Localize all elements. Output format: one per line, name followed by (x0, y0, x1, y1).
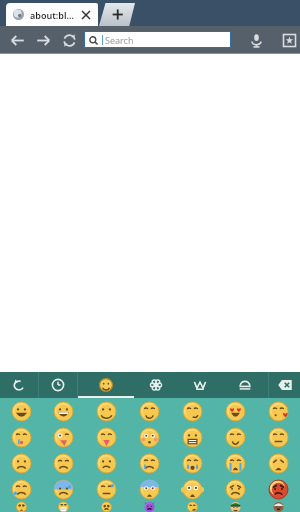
button[interactable]: Emoji TONGUE_WINK (42, 424, 85, 450)
button[interactable]: Emoji GRIMACE (171, 424, 214, 450)
button[interactable]: Emoji TONGUE (85, 424, 128, 450)
button[interactable]: Objects (178, 372, 222, 398)
button[interactable]: Emoji PERSEVERE (0, 502, 42, 512)
button[interactable]: Emoji GRIN (42, 398, 85, 424)
button[interactable]: Voice search (243, 27, 269, 53)
staticText: about:bl… (30, 9, 74, 21)
button[interactable]: Emoji FEARFUL (128, 476, 171, 502)
button[interactable]: Emoji SCREAM (171, 476, 214, 502)
button[interactable]: Emoji CRY_LOUD (171, 450, 214, 476)
button[interactable]: Emoji WORRIED (0, 450, 42, 476)
button[interactable]: Emoji HEART (214, 398, 257, 424)
button[interactable]: Emoji SWEAT (0, 476, 42, 502)
button[interactable]: Emoji SMIRK (171, 398, 214, 424)
button[interactable]: Smileys (78, 372, 134, 398)
button[interactable]: Bookmarks (279, 27, 300, 53)
button[interactable]: Emoji SAVOR (0, 424, 42, 450)
button[interactable]: Recent (39, 372, 77, 398)
button[interactable]: Emoji ELF (214, 502, 257, 512)
button[interactable]: Emoji RELIEF (128, 398, 171, 424)
button[interactable]: Travel (222, 372, 268, 398)
button[interactable]: Emoji SLEEPY (257, 424, 300, 450)
button[interactable]: Emoji DEVIL (128, 502, 171, 512)
button[interactable]: Emoji KISS (257, 398, 300, 424)
button[interactable]: Emoji COLD_SWEAT (42, 476, 85, 502)
button[interactable]: Emoji ANXIOUS (85, 476, 128, 502)
button[interactable]: Emoji SOB (214, 450, 257, 476)
button[interactable]: about:bl… (6, 3, 98, 26)
button[interactable]: Emoji FLUSH (128, 424, 171, 450)
button[interactable]: New tab (99, 3, 135, 26)
button[interactable]: Emoji SMILE (0, 398, 42, 424)
button[interactable]: Nature (134, 372, 178, 398)
button[interactable]: Emoji MASK (42, 502, 85, 512)
button[interactable]: Close tab (79, 8, 92, 21)
button[interactable]: Reload (56, 27, 82, 53)
button[interactable]: Emoji SMUG (171, 502, 214, 512)
button[interactable]: Emoji CONFUSED (85, 450, 128, 476)
button[interactable]: Emoji SLIGHT (85, 398, 128, 424)
button[interactable]: Emoji ANGRY (214, 476, 257, 502)
button[interactable]: Emoji CRY_ONE (128, 450, 171, 476)
button[interactable]: Back (4, 27, 30, 53)
button[interactable]: Emoji RAGE (257, 476, 300, 502)
button[interactable]: Emoji PENSIVE_SMILE (214, 424, 257, 450)
button[interactable]: Undo (0, 372, 38, 398)
button[interactable]: Emoji WEARY (257, 450, 300, 476)
button[interactable]: Emoji DIZZY (85, 502, 128, 512)
staticText: Search (105, 34, 134, 46)
button[interactable]: Emoji DISAPPOINT (42, 450, 85, 476)
button[interactable]: Search (85, 32, 230, 47)
button[interactable]: Emoji OLD (257, 502, 300, 512)
button[interactable]: Forward (30, 27, 56, 53)
button[interactable]: Delete (269, 372, 300, 398)
